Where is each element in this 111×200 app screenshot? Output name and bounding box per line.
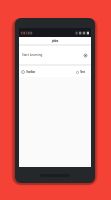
- staticText: Next: [80, 70, 85, 74]
- other: Info: [84, 54, 87, 57]
- staticText: jenkins: [52, 39, 58, 43]
- staticText: Show Base: [26, 70, 35, 74]
- button[interactable]: Start Learning: [19, 46, 91, 64]
- button[interactable]: Next: [75, 70, 86, 74]
- staticText: Start Learning: [22, 53, 43, 57]
- button[interactable]: Show Base: [20, 70, 36, 74]
- button[interactable]: jenkins: [19, 37, 91, 44]
